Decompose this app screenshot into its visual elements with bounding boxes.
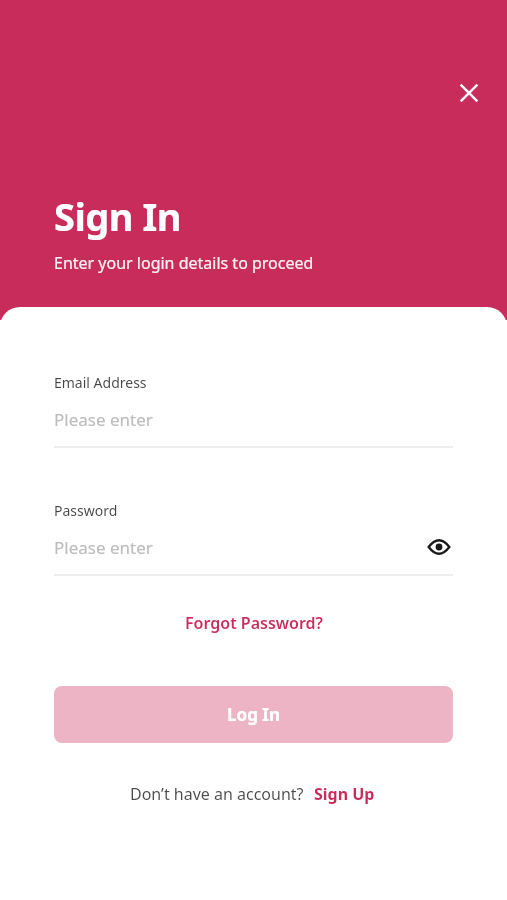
button[interactable]: Please enter (54, 533, 453, 561)
button[interactable]: Sign Up (312, 781, 377, 807)
staticText: Enter your login details to proceed (54, 252, 314, 274)
button[interactable]: Log In (54, 686, 453, 743)
button[interactable]: Show password (425, 533, 453, 561)
staticText: Sign Up (314, 783, 375, 805)
staticText: Don’t have an account? (130, 783, 304, 805)
button[interactable]: Forgot Password? (54, 606, 453, 640)
staticText: Password (54, 501, 118, 520)
button[interactable]: Please enter (54, 405, 453, 433)
staticText: Email Address (54, 373, 147, 392)
staticText: Please enter (54, 408, 153, 431)
button[interactable]: Close (445, 69, 493, 117)
staticText: Log In (227, 703, 280, 726)
staticText: Sign In (54, 190, 181, 242)
staticText: Forgot Password? (185, 612, 323, 634)
staticText: Please enter (54, 536, 153, 559)
